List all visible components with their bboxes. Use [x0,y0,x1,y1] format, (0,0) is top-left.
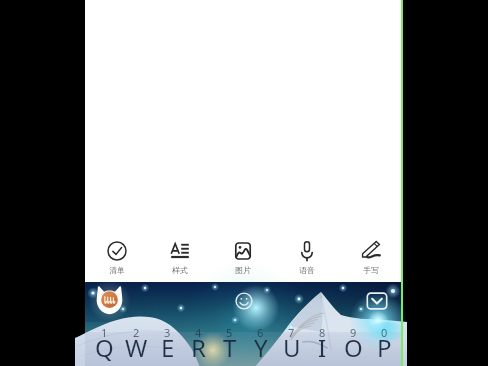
staticText: 9 [350,325,357,340]
staticText: T [223,331,237,364]
staticText: U [283,331,301,364]
button[interactable]: 9 [338,320,369,366]
staticText: O [344,331,363,364]
staticText: E [161,331,175,364]
staticText: 4 [195,325,202,340]
staticText: 8 [319,325,326,340]
staticText: 样式 [172,265,188,275]
staticText: W [125,331,148,364]
staticText: P [377,331,392,364]
button[interactable]: 样式 [148,230,211,282]
staticText: 0 [381,325,388,340]
staticText: 2 [133,325,140,340]
staticText: 清单 [109,265,125,275]
staticText: I [318,331,327,364]
button[interactable]: 3 [152,320,183,366]
button[interactable]: Input method settings [96,286,123,315]
button[interactable]: 8 [307,320,338,366]
button[interactable]: 4 [183,320,214,366]
staticText: Y [254,331,268,364]
button[interactable]: Emoji [235,292,253,310]
button[interactable]: 手写 [339,230,403,282]
button[interactable]: 图片 [211,230,275,282]
staticText: 3 [164,325,171,340]
button[interactable]: 1 [88,320,120,366]
staticText: 1 [101,325,108,340]
staticText: Q [95,331,114,364]
staticText: 手写 [363,265,379,275]
button[interactable]: 语音 [275,230,339,282]
button[interactable]: 6 [245,320,276,366]
button[interactable]: 2 [120,320,152,366]
staticText: R [191,331,206,364]
button[interactable]: 0 [369,320,400,366]
button[interactable]: 清单 [85,230,148,282]
staticText: 图片 [235,265,251,275]
staticText: 7 [288,325,295,340]
staticText: 5 [226,325,233,340]
button[interactable]: Hide keyboard [366,292,388,310]
staticText: 语音 [299,265,315,275]
button[interactable]: 5 [214,320,245,366]
button[interactable]: 7 [276,320,307,366]
staticText: 6 [257,325,264,340]
